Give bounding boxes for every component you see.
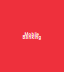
staticText: Banking — [22, 34, 41, 40]
staticText: Mobile — [24, 32, 39, 37]
